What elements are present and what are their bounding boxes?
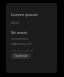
staticText: dolor (11, 20, 20, 25)
staticText: Continue (14, 54, 28, 58)
staticText: Sit amet (11, 30, 28, 35)
staticText: consectetur (11, 37, 29, 41)
button[interactable]: Continue (11, 53, 31, 59)
staticText: sed do eiusmod (11, 49, 34, 53)
staticText: Lorem ipsum (11, 12, 38, 18)
staticText: adipiscing elit (11, 42, 32, 46)
